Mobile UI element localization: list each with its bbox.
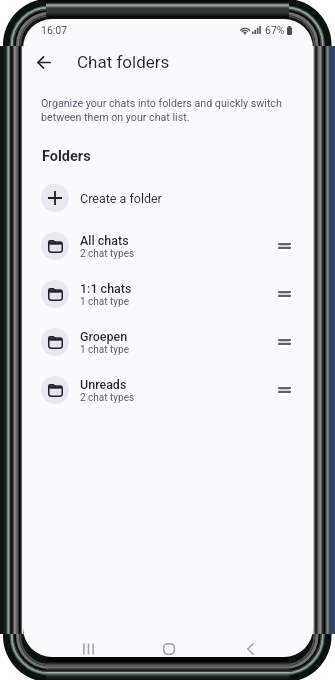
staticText: Groepen <box>80 329 128 344</box>
staticText: 1:1 chats <box>80 281 132 296</box>
button[interactable]: Back <box>234 633 266 657</box>
staticText: 2 chat types <box>80 248 135 260</box>
button[interactable]: Reorder <box>273 379 295 401</box>
staticText: 16:07 <box>41 24 68 36</box>
button[interactable]: All chats <box>23 222 313 270</box>
staticText: All chats <box>80 233 129 248</box>
button[interactable]: Reorder <box>273 283 295 305</box>
staticText: Chat folders <box>77 52 170 72</box>
button[interactable]: Reorder <box>273 235 295 257</box>
button[interactable]: Create a folder <box>23 174 313 222</box>
staticText: Folders <box>42 148 91 165</box>
staticText: 1 chat type <box>80 296 129 308</box>
button[interactable]: Unreads <box>23 366 313 414</box>
button[interactable]: Recent apps <box>72 633 104 657</box>
button[interactable]: Groepen <box>23 318 313 366</box>
staticText: Unreads <box>80 377 127 392</box>
staticText: Organize your chats into folders and qui… <box>41 97 297 124</box>
staticText: 1 chat type <box>80 344 129 356</box>
staticText: Create a folder <box>80 191 162 206</box>
button[interactable]: 1:1 chats <box>23 270 313 318</box>
staticText: 67% <box>265 24 285 36</box>
staticText: 2 chat types <box>80 392 135 404</box>
button[interactable]: Back <box>28 46 60 78</box>
button[interactable]: Reorder <box>273 331 295 353</box>
button[interactable]: Home <box>153 633 185 657</box>
